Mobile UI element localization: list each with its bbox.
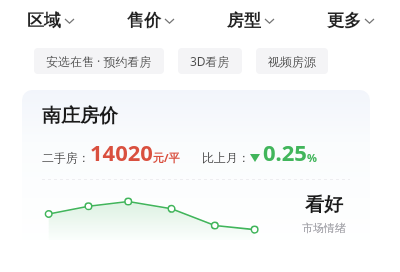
staticText: 3D看房 xyxy=(190,53,230,69)
staticText: 元/平 xyxy=(153,150,180,165)
staticText: 0.25 xyxy=(263,137,307,167)
button[interactable]: 3D看房 xyxy=(178,48,242,74)
staticText: 安选在售 · 预约看房 xyxy=(46,53,152,69)
staticText: 二手房： xyxy=(42,150,90,165)
staticText: 区域 xyxy=(27,10,61,31)
button[interactable]: 南庄房价 xyxy=(22,90,370,250)
button[interactable]: 售价 xyxy=(100,6,200,35)
staticText: 看好 xyxy=(305,193,343,217)
staticText: 14020 xyxy=(90,137,153,167)
staticText: 更多 xyxy=(327,10,361,31)
staticText: 市场情绪 xyxy=(302,221,346,235)
button[interactable]: 房型 xyxy=(200,6,300,35)
button[interactable]: 区域 xyxy=(0,6,100,35)
button[interactable]: 安选在售 · 预约看房 xyxy=(34,48,164,74)
staticText: % xyxy=(307,150,317,165)
staticText: 比上月： xyxy=(202,150,250,165)
button[interactable]: 视频房源 xyxy=(256,48,328,74)
button[interactable]: 更多 xyxy=(300,6,400,35)
staticText: 南庄房价 xyxy=(42,104,118,128)
staticText: 售价 xyxy=(127,10,161,31)
staticText: 房型 xyxy=(227,10,261,31)
staticText: 视频房源 xyxy=(268,54,316,69)
